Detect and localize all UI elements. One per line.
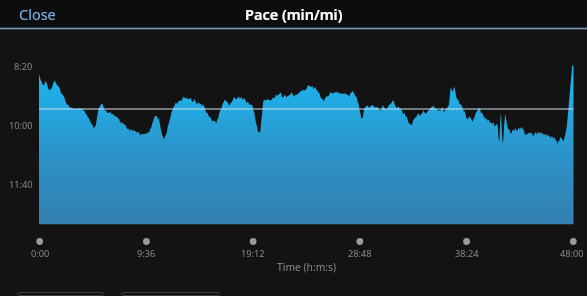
staticText: 9:36 <box>137 247 156 260</box>
staticText: 10:00 <box>9 119 33 132</box>
button[interactable]: Pace <box>17 292 104 296</box>
staticText: Pace (min/mi) <box>245 4 343 24</box>
staticText: 0:00 <box>31 247 50 260</box>
button[interactable]: Elevation <box>121 292 220 296</box>
staticText: 8:20 <box>14 60 33 73</box>
staticText: 28:48 <box>348 247 372 260</box>
staticText: 38:24 <box>455 247 479 260</box>
staticText: 48:00 <box>560 247 584 260</box>
staticText: 19:12 <box>241 247 265 260</box>
staticText: Pace <box>47 292 74 296</box>
staticText: Elevation <box>145 292 197 296</box>
staticText: 11:40 <box>9 178 33 191</box>
button[interactable]: Close <box>0 0 68 27</box>
staticText: Close <box>19 4 56 23</box>
staticText: Time (h:m:s) <box>277 260 337 274</box>
